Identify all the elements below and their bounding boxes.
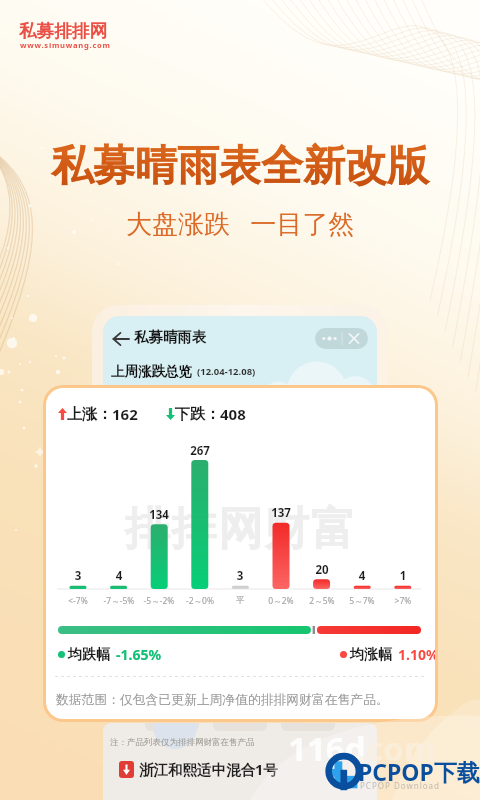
staticText: www.simuwang.com xyxy=(20,40,111,50)
staticText: 1 xyxy=(387,568,419,584)
staticText: 408 xyxy=(220,404,246,424)
staticText: 排排网财富 xyxy=(125,501,358,558)
staticText: 116d xyxy=(288,726,366,771)
staticText: 1.10% xyxy=(398,645,435,664)
staticText: 数据范围：仅包含已更新上周净值的排排网财富在售产品。 xyxy=(56,692,389,708)
staticText: 267 xyxy=(184,443,216,459)
staticText: 162 xyxy=(112,404,138,424)
staticText: 上周涨跌总览 xyxy=(111,363,192,380)
staticText: 注：产品列表仅为排排网财富在售产品 xyxy=(110,737,255,748)
staticText: PCPOP Download xyxy=(360,780,440,791)
staticText: 20 xyxy=(306,562,338,578)
staticText: -7～-5% xyxy=(93,595,145,607)
staticText: 4 xyxy=(346,568,378,584)
staticText: <-7% xyxy=(52,595,104,607)
staticText: -1.65% xyxy=(116,645,162,664)
staticText: 134 xyxy=(143,507,175,523)
staticText: 平 xyxy=(214,595,266,606)
staticText: 浙江和熙适中混合1号 xyxy=(139,759,278,779)
staticText: 3 xyxy=(62,568,94,584)
staticText: -5～-2% xyxy=(133,595,185,607)
staticText: 私募排排网 xyxy=(19,20,107,42)
staticText: 5～7% xyxy=(336,595,388,607)
staticText: 大盘涨跌 一目了然 xyxy=(126,205,355,241)
staticText: >7% xyxy=(377,595,429,607)
staticText: 均涨幅 xyxy=(350,646,392,664)
staticText: 137 xyxy=(265,505,297,521)
staticText: 均跌幅 xyxy=(68,646,110,664)
staticText: 上涨： xyxy=(67,405,112,424)
button[interactable]: Back xyxy=(112,330,130,348)
staticText: 2～5% xyxy=(296,595,348,607)
staticText: 4 xyxy=(103,568,135,584)
staticText: PCPOP下载 xyxy=(358,756,480,787)
staticText: 0～2% xyxy=(255,595,307,607)
staticText: 私募晴雨表全新改版 xyxy=(51,140,429,193)
staticText: .com xyxy=(357,726,437,771)
staticText: -2～0% xyxy=(174,595,226,607)
button[interactable]: More options xyxy=(315,328,368,349)
staticText: 下跌： xyxy=(175,405,220,424)
staticText: (12.04-12.08) xyxy=(197,365,256,378)
staticText: 私募晴雨表 xyxy=(134,328,207,346)
staticText: 3 xyxy=(224,568,256,584)
